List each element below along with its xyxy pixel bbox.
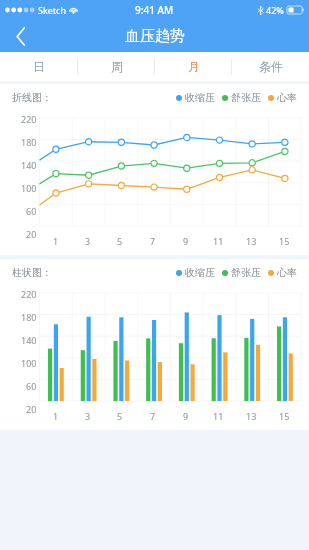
staticText: 180 [21, 311, 37, 323]
staticText: 5 [117, 235, 123, 247]
staticText: 柱状图： [12, 266, 52, 279]
staticText: 收缩压 [185, 91, 215, 104]
staticText: 1 [53, 410, 59, 422]
staticText: Sketch [38, 4, 66, 16]
staticText: 42% [266, 4, 284, 16]
staticText: 13 [246, 235, 257, 247]
button[interactable]: 周 [78, 52, 155, 81]
staticText: 9 [183, 235, 189, 247]
staticText: 3 [85, 235, 91, 247]
staticText: 60 [26, 205, 37, 217]
staticText: 舒张压 [231, 266, 261, 279]
staticText: 20 [26, 403, 37, 415]
staticText: 月 [188, 59, 200, 74]
button[interactable]: Back [0, 20, 42, 52]
button[interactable]: 条件 [232, 52, 309, 81]
button[interactable]: 月 [155, 52, 232, 81]
staticText: 折线图： [12, 91, 52, 104]
staticText: 60 [26, 380, 37, 392]
staticText: 心率 [277, 91, 297, 104]
staticText: 11 [213, 235, 224, 247]
staticText: 3 [85, 410, 91, 422]
staticText: 20 [26, 228, 37, 240]
staticText: 180 [21, 136, 37, 148]
staticText: 100 [21, 357, 37, 369]
button[interactable]: 日 [0, 52, 78, 81]
staticText: 7 [150, 410, 156, 422]
staticText: 11 [213, 410, 224, 422]
staticText: 收缩压 [185, 266, 215, 279]
staticText: 周 [111, 59, 123, 74]
staticText: 血压趋势 [125, 27, 185, 46]
staticText: 9:41 AM [135, 3, 174, 17]
staticText: 7 [150, 235, 156, 247]
staticText: 15 [279, 410, 290, 422]
staticText: 100 [21, 182, 37, 194]
staticText: 140 [21, 159, 37, 171]
staticText: 15 [279, 235, 290, 247]
staticText: 1 [53, 235, 59, 247]
staticText: 舒张压 [231, 91, 261, 104]
staticText: 220 [21, 288, 37, 300]
staticText: 9 [183, 410, 189, 422]
staticText: 心率 [277, 266, 297, 279]
staticText: 日 [33, 59, 45, 74]
staticText: 220 [21, 113, 37, 125]
staticText: 140 [21, 334, 37, 346]
staticText: 条件 [259, 59, 283, 74]
staticText: 5 [117, 410, 123, 422]
staticText: 13 [246, 410, 257, 422]
